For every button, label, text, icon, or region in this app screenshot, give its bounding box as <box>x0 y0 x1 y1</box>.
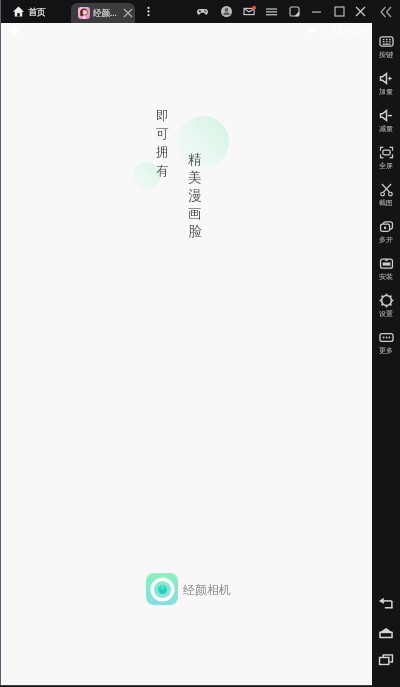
staticText: 精 <box>188 151 202 168</box>
button[interactable]: 加量 <box>372 69 400 100</box>
staticText: 有 <box>156 163 169 179</box>
button[interactable]: 首页 <box>13 0 63 23</box>
staticText: 加量 <box>379 87 393 96</box>
staticText: 首页 <box>28 6 46 17</box>
staticText: 安装 <box>379 272 393 281</box>
staticText: 脸 <box>188 223 202 240</box>
staticText: 画 <box>188 205 202 222</box>
button[interactable]: Minimize <box>306 0 327 23</box>
button[interactable]: Messages <box>238 0 261 23</box>
staticText: 经颜... <box>93 7 117 19</box>
button[interactable]: Account <box>215 0 238 23</box>
button[interactable]: 全屏 <box>372 143 400 174</box>
button[interactable]: 更多 <box>372 328 400 359</box>
button[interactable]: 安装 <box>372 254 400 285</box>
staticText: 设置 <box>379 309 393 318</box>
staticText: 即 <box>156 108 169 124</box>
button[interactable]: 经颜相机 <box>146 573 231 605</box>
staticText: 拥 <box>156 144 169 160</box>
staticText: 美 <box>188 169 202 186</box>
staticText: 按键 <box>379 50 393 59</box>
button[interactable]: Window <box>284 0 305 23</box>
button[interactable]: 截图 <box>372 180 400 211</box>
staticText: 全屏 <box>379 161 393 170</box>
button[interactable]: 多开 <box>372 217 400 248</box>
staticText: 更多 <box>379 346 393 355</box>
button[interactable]: Close tab <box>121 3 135 23</box>
button[interactable]: Maximize <box>329 0 350 23</box>
staticText: 漫 <box>188 187 202 204</box>
button[interactable]: Tab options <box>142 0 155 23</box>
staticText: 截图 <box>379 198 393 207</box>
staticText: 可 <box>156 126 169 142</box>
button[interactable]: Games <box>191 0 214 23</box>
staticText: 多开 <box>379 235 393 244</box>
staticText: 经颜相机 <box>183 582 231 597</box>
button[interactable]: 设置 <box>372 291 400 322</box>
button[interactable]: Menu <box>260 0 283 23</box>
button[interactable]: Home <box>372 622 400 644</box>
button[interactable]: Collapse sidebar <box>375 0 397 23</box>
staticText: 减量 <box>379 124 393 133</box>
button[interactable]: 按键 <box>372 32 400 63</box>
button[interactable]: 减量 <box>372 106 400 137</box>
button[interactable]: 经颜... <box>71 3 135 23</box>
button[interactable]: Back <box>372 593 400 615</box>
button[interactable]: Close <box>350 0 371 23</box>
button[interactable]: Recent apps <box>372 649 400 671</box>
